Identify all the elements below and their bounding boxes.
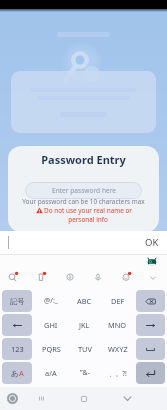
button[interactable]: 、。?!	[103, 362, 132, 384]
button[interactable]: WXYZ	[103, 338, 132, 360]
button[interactable]: GHI	[36, 314, 66, 336]
button[interactable]: TUV	[70, 338, 99, 360]
button[interactable]: Voice input	[92, 271, 104, 283]
button[interactable]: ABC	[70, 290, 99, 312]
staticText: PQRS	[42, 344, 61, 354]
staticText: TUV	[78, 344, 92, 354]
button[interactable]: del	[136, 290, 165, 312]
button[interactable]: left	[2, 314, 32, 336]
staticText: ”&-	[80, 368, 90, 378]
button[interactable]: DEF	[103, 290, 132, 312]
staticText: 123	[11, 344, 24, 354]
staticText: ABC	[77, 296, 92, 306]
other: right	[144, 319, 157, 332]
staticText: JKL	[79, 320, 90, 330]
staticText: Do not use your real name or personal in…	[44, 206, 132, 224]
button[interactable]: a/A	[36, 362, 66, 384]
button[interactable]: Keyboard app	[147, 257, 157, 267]
button[interactable]: Emoji	[120, 271, 132, 283]
other: space	[144, 343, 157, 356]
button[interactable]: PQRS	[36, 338, 66, 360]
button[interactable]: Search	[7, 271, 19, 283]
staticText: Your password can be 10 characters max	[8, 197, 159, 206]
button[interactable]: あ	[2, 362, 32, 384]
staticText: 記号	[10, 297, 25, 306]
button[interactable]: More	[147, 272, 158, 283]
button[interactable]: JKL	[70, 314, 99, 336]
staticText: @/:_	[44, 296, 58, 306]
button[interactable]: Translate	[64, 271, 76, 283]
staticText: a/A	[45, 368, 57, 378]
button[interactable]: 記号	[2, 290, 32, 312]
button[interactable]: OK	[145, 236, 159, 249]
button[interactable]: Recents	[36, 393, 47, 404]
button[interactable]: Switch keyboard	[7, 393, 18, 404]
button[interactable]: 123	[2, 338, 32, 360]
button[interactable]: right	[136, 314, 165, 336]
other: enter	[144, 367, 157, 380]
staticText: GHI	[44, 320, 58, 330]
staticText: MNO	[108, 320, 127, 330]
button[interactable]: @/:_	[36, 290, 66, 312]
button[interactable]: Home	[78, 393, 89, 404]
staticText: OK	[145, 236, 159, 249]
staticText: WXYZ	[108, 344, 128, 354]
staticText: Enter password here	[52, 186, 116, 195]
staticText: DEF	[111, 296, 125, 306]
button[interactable]: MNO	[103, 314, 132, 336]
staticText: A	[19, 368, 24, 378]
button[interactable]: Enter password here	[25, 182, 142, 199]
staticText: Password Entry	[8, 152, 159, 167]
other: left	[11, 319, 24, 332]
button[interactable]: Stickers	[35, 271, 47, 283]
staticText: あ	[11, 369, 19, 378]
button[interactable]: enter	[136, 362, 165, 384]
button[interactable]: Back	[122, 393, 133, 404]
button[interactable]: space	[136, 338, 165, 360]
staticText: 、。?!	[109, 369, 127, 378]
button[interactable]: ”&-	[70, 362, 99, 384]
other: del	[144, 295, 157, 308]
